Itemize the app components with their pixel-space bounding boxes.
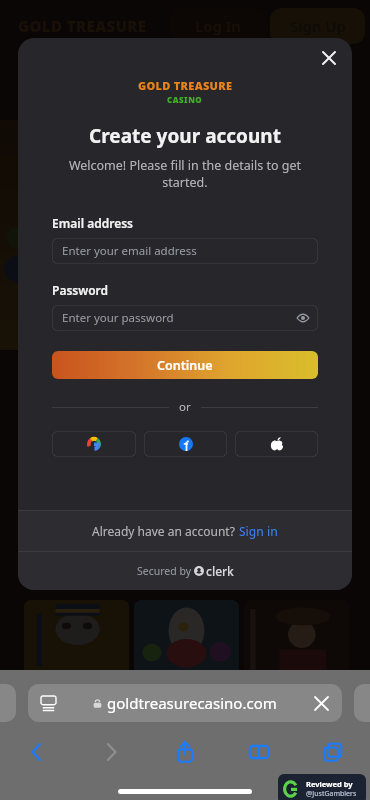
staticText: Create your account: [18, 123, 352, 149]
button[interactable]: Continue: [52, 351, 318, 379]
button[interactable]: [244, 600, 349, 675]
button[interactable]: Bookmarks: [222, 732, 296, 772]
staticText: Email address: [52, 215, 134, 231]
button[interactable]: Sign up with Apple: [235, 431, 318, 457]
staticText: GOLD TREASURE: [138, 78, 233, 93]
button[interactable]: Page settings: [36, 691, 60, 715]
staticText: goldtreasurecasino.com: [107, 693, 277, 713]
button[interactable]: [24, 600, 129, 675]
button[interactable]: Back: [0, 732, 74, 772]
button[interactable]: Sign up with Facebook: [144, 431, 227, 457]
staticText: Password: [52, 282, 109, 298]
staticText: clerk: [206, 563, 234, 579]
staticText: Log In: [195, 16, 241, 36]
button[interactable]: Sign up with Google: [52, 431, 136, 457]
staticText: Enter your password: [62, 310, 174, 326]
staticText: GOLD TREASURE: [18, 16, 147, 36]
staticText: Reviewed by: [306, 779, 353, 789]
staticText: or: [179, 399, 191, 415]
button[interactable]: Page settings: [28, 684, 342, 722]
button[interactable]: Share: [148, 732, 222, 772]
staticText: Enter your email address: [62, 243, 197, 259]
button[interactable]: Stop loading: [308, 690, 334, 716]
staticText: @JustGamblers: [306, 789, 357, 799]
staticText: Already have an account?: [92, 523, 239, 539]
staticText: CASINO: [167, 94, 203, 105]
staticText: Secured by: [137, 564, 194, 578]
button[interactable]: Enter your email address: [52, 238, 318, 264]
button[interactable]: Reviewed by: [278, 774, 366, 800]
button[interactable]: Tabs: [296, 732, 370, 772]
staticText: Welcome! Please fill in the details to g…: [60, 157, 310, 191]
staticText: Sign in: [239, 523, 278, 539]
button[interactable]: Log In: [170, 8, 265, 44]
button[interactable]: [134, 600, 239, 675]
button[interactable]: Forward: [74, 732, 148, 772]
button[interactable]: Sign in: [239, 523, 278, 539]
button[interactable]: Sign Up: [270, 8, 365, 44]
button[interactable]: Enter your password: [52, 305, 318, 331]
staticText: Continue: [157, 357, 213, 374]
button[interactable]: Show password: [294, 309, 312, 327]
button[interactable]: Close: [314, 43, 344, 73]
